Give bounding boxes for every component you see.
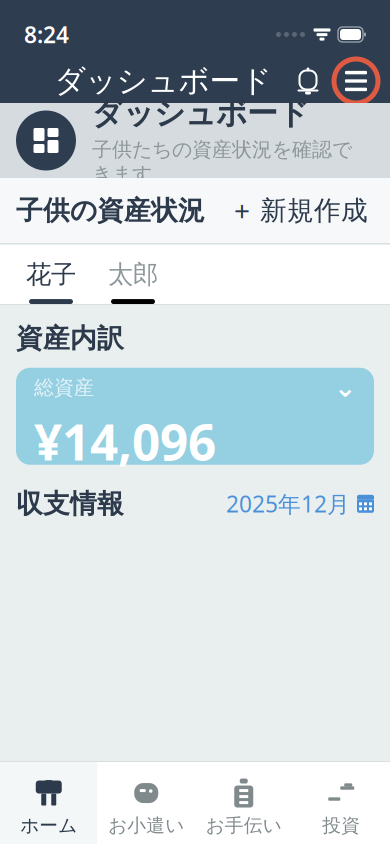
staticText: 収支情報 — [16, 487, 124, 520]
staticText: 8:24 — [24, 19, 69, 49]
button[interactable]: + — [228, 186, 374, 235]
staticText: + — [234, 192, 250, 229]
staticText: ¥1,150 — [277, 800, 348, 830]
staticText: 資産内訳 — [16, 322, 124, 355]
staticText: 総資産 — [34, 375, 94, 400]
button[interactable]: 投資 — [292, 762, 390, 844]
staticText: 2025年12月 — [226, 489, 350, 519]
button[interactable]: 2025年12月 — [226, 485, 374, 523]
staticText: ホーム — [20, 814, 77, 837]
button[interactable]: 太郎 — [92, 245, 174, 304]
staticText: ダッシュボード — [54, 62, 271, 100]
staticText: 子供の資産状況 — [16, 194, 205, 227]
staticText: 花子 — [26, 259, 76, 290]
staticText: お小遣い — [108, 814, 184, 837]
button[interactable]: 花子 — [10, 245, 92, 304]
staticText: ¥6,206 — [277, 757, 348, 787]
staticText: ⌄ — [334, 372, 356, 403]
staticText: 太郎 — [108, 259, 158, 290]
button[interactable]: 通知 — [286, 59, 330, 103]
button[interactable]: お小遣い — [97, 762, 195, 844]
staticText: ダッシュボード — [92, 95, 309, 132]
staticText: 新規作成 — [260, 194, 368, 227]
staticText: 投資 — [322, 814, 360, 837]
button[interactable]: 総資産 — [16, 368, 374, 465]
button[interactable]: メニュー — [330, 55, 382, 107]
staticText: 子供たちの資産状況を確認できます — [92, 137, 352, 186]
button[interactable]: ホーム — [0, 762, 97, 844]
staticText: お手伝い — [206, 814, 282, 837]
staticText: 投資売却 — [42, 758, 134, 786]
staticText: ¥14,096 — [34, 409, 216, 474]
button[interactable]: お手伝い — [195, 762, 292, 844]
staticText: 預金解約 — [42, 801, 134, 829]
